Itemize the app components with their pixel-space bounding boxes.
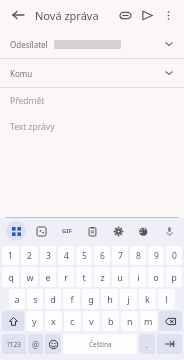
button[interactable]: Čeština: [63, 334, 137, 354]
button[interactable]: Text zprávy: [0, 114, 184, 140]
button[interactable]: w: [21, 267, 38, 287]
staticText: n: [127, 315, 133, 327]
staticText: 2: [27, 250, 32, 262]
button[interactable]: h: [101, 289, 118, 309]
staticText: u: [117, 271, 123, 283]
staticText: ?123: [7, 340, 21, 349]
staticText: l: [165, 293, 168, 305]
staticText: Odesílatel: [10, 39, 48, 50]
button[interactable]: Komu: [0, 59, 184, 87]
staticText: 4: [64, 250, 69, 262]
button[interactable]: e: [40, 267, 56, 287]
staticText: i: [137, 271, 140, 283]
staticText: @: [32, 339, 40, 350]
button[interactable]: More options: [158, 5, 178, 25]
staticText: 0: [172, 250, 177, 262]
staticText: o: [153, 271, 159, 283]
staticText: b: [108, 315, 114, 327]
staticText: d: [50, 293, 56, 305]
staticText: f: [70, 293, 74, 305]
button[interactable]: v: [83, 311, 100, 331]
button[interactable]: Back: [8, 5, 28, 25]
button[interactable]: z: [94, 267, 110, 287]
button[interactable]: Voice input: [159, 221, 179, 241]
staticText: m: [144, 315, 153, 327]
staticText: 7: [118, 250, 123, 262]
staticText: x: [51, 315, 56, 327]
staticText: 9: [154, 250, 159, 262]
button[interactable]: p: [166, 267, 182, 287]
staticText: Nová zpráva: [35, 8, 99, 23]
button[interactable]: r: [58, 267, 74, 287]
button[interactable]: 1: [2, 246, 19, 265]
staticText: s: [33, 293, 38, 305]
button[interactable]: k: [139, 289, 156, 309]
button[interactable]: GIF: [57, 221, 77, 241]
button[interactable]: 5: [76, 246, 92, 265]
button[interactable]: 7: [112, 246, 128, 265]
button[interactable]: Settings: [108, 221, 128, 241]
staticText: .: [146, 339, 149, 350]
button[interactable]: n: [121, 311, 138, 331]
button[interactable]: f: [63, 289, 80, 309]
staticText: Čeština: [89, 340, 112, 349]
button[interactable]: Odesílatel: [0, 30, 184, 58]
staticText: g: [88, 293, 94, 305]
button[interactable]: .: [139, 334, 155, 354]
staticText: GIF: [62, 227, 72, 235]
button[interactable]: Emoji: [45, 334, 61, 354]
staticText: k: [145, 293, 150, 305]
button[interactable]: Next field: [157, 334, 182, 354]
staticText: h: [107, 293, 113, 305]
staticText: j: [127, 293, 130, 305]
button[interactable]: u: [112, 267, 128, 287]
button[interactable]: Themes: [133, 221, 153, 241]
staticText: w: [26, 271, 34, 283]
staticText: Text zprávy: [10, 121, 55, 133]
button[interactable]: Předmět: [0, 88, 184, 114]
button[interactable]: 0: [166, 246, 182, 265]
button[interactable]: Shift: [2, 311, 24, 331]
button[interactable]: Backspace: [159, 311, 182, 331]
staticText: Komu: [10, 68, 33, 79]
button[interactable]: Clipboard: [82, 221, 102, 241]
staticText: 3: [46, 250, 51, 262]
staticText: v: [89, 315, 94, 327]
button[interactable]: o: [148, 267, 164, 287]
button[interactable]: 6: [94, 246, 110, 265]
button[interactable]: Keyboard modes: [6, 221, 26, 241]
staticText: y: [32, 315, 37, 327]
button[interactable]: q: [2, 267, 19, 287]
button[interactable]: g: [82, 289, 99, 309]
button[interactable]: 8: [130, 246, 146, 265]
button[interactable]: l: [158, 289, 175, 309]
button[interactable]: d: [45, 289, 61, 309]
button[interactable]: Send: [136, 4, 158, 26]
button[interactable]: m: [140, 311, 157, 331]
button[interactable]: Stickers: [31, 221, 51, 241]
button[interactable]: c: [64, 311, 81, 331]
button[interactable]: b: [102, 311, 119, 331]
button[interactable]: y: [26, 311, 43, 331]
staticText: t: [82, 271, 86, 283]
staticText: Předmět: [10, 95, 45, 107]
button[interactable]: t: [76, 267, 92, 287]
button[interactable]: 3: [40, 246, 56, 265]
button[interactable]: @: [28, 334, 43, 354]
button[interactable]: j: [120, 289, 137, 309]
staticText: 1: [8, 250, 13, 262]
button[interactable]: s: [27, 289, 43, 309]
staticText: r: [64, 271, 68, 283]
button[interactable]: x: [45, 311, 62, 331]
button[interactable]: 9: [148, 246, 164, 265]
staticText: 6: [100, 250, 105, 262]
staticText: p: [171, 271, 177, 283]
button[interactable]: Attach file: [114, 4, 136, 26]
button[interactable]: 2: [21, 246, 38, 265]
staticText: 8: [136, 250, 141, 262]
button[interactable]: ?123: [2, 334, 26, 354]
button[interactable]: 4: [58, 246, 74, 265]
staticText: z: [100, 271, 105, 283]
button[interactable]: i: [130, 267, 146, 287]
button[interactable]: a: [9, 289, 25, 309]
